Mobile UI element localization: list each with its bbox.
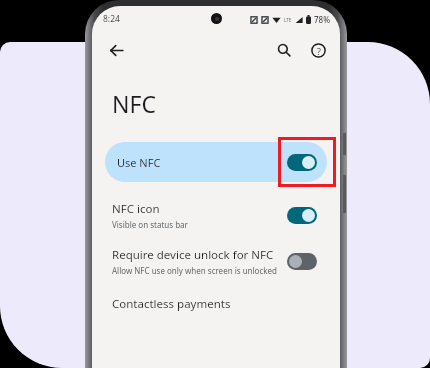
- button[interactable]: Back: [102, 36, 130, 64]
- staticText: LTE: [284, 17, 292, 23]
- staticText: Use NFC: [117, 155, 161, 170]
- staticText: Require device unlock for NFC: [112, 247, 274, 263]
- staticText: 78%: [314, 14, 330, 25]
- button[interactable]: Search: [270, 36, 298, 64]
- staticText: 8:24: [103, 13, 120, 25]
- button[interactable]: Help: [304, 36, 332, 64]
- button[interactable]: Use NFC: [105, 142, 327, 182]
- button[interactable]: Require device unlock for NFC: [92, 247, 340, 276]
- button[interactable]: Toggle on: [287, 154, 317, 171]
- staticText: NFC icon: [112, 201, 160, 217]
- staticText: ?: [317, 45, 321, 57]
- staticText: Visible on status bar: [112, 219, 188, 230]
- staticText: Contactless payments: [112, 296, 231, 312]
- button[interactable]: NFC icon: [92, 201, 340, 230]
- staticText: Allow NFC use only when screen is unlock…: [112, 265, 277, 276]
- button[interactable]: Toggle on: [287, 207, 317, 224]
- button[interactable]: Toggle off: [287, 253, 317, 270]
- button[interactable]: Contactless payments: [92, 294, 340, 318]
- staticText: NFC: [112, 88, 156, 119]
